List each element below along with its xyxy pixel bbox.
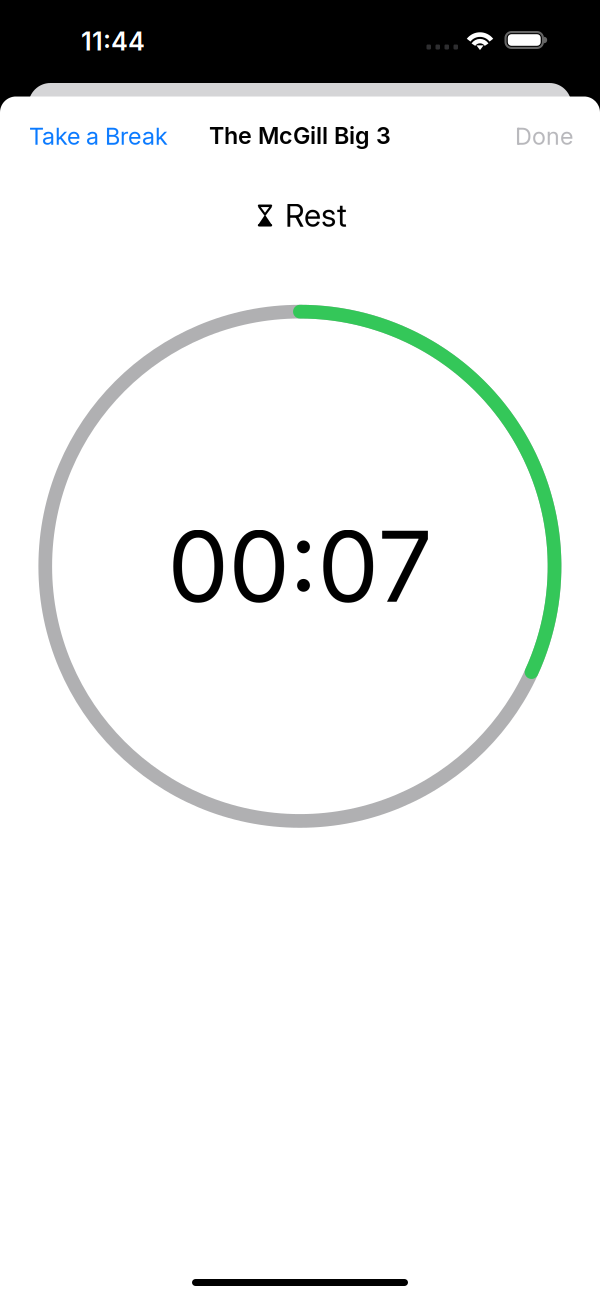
navigationBar: The McGill Big 3 xyxy=(0,96,600,175)
button[interactable]: Take a Break xyxy=(17,102,180,170)
staticText: Take a Break xyxy=(29,122,168,150)
button[interactable]: Done xyxy=(503,102,585,170)
sheet: The McGill Big 3 xyxy=(0,96,600,1300)
staticText: 11:44 xyxy=(81,26,145,57)
staticText: The McGill Big 3 xyxy=(209,121,391,150)
staticText: 00:07 xyxy=(167,507,432,625)
staticText: Done xyxy=(515,122,573,150)
staticText: Rest xyxy=(285,197,347,234)
